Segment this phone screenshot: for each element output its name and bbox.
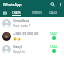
button[interactable]: Search [48,0,57,9]
button[interactable]: +380 99 000 00 [0,30,64,43]
button[interactable]: Vasyl [0,43,64,56]
staticText: 12:44 [50,45,57,49]
staticText: +380 99 000 00 [13,31,39,36]
staticText: 14:02 [50,32,57,36]
button[interactable]: Camera [0,9,10,17]
staticText: CALLS [49,11,58,15]
button[interactable]: Gmailbox [0,17,64,30]
button[interactable]: STATUS [28,9,46,17]
button[interactable]: More options [57,1,64,8]
staticText: Vasyl [13,44,22,49]
button[interactable]: CALLS [45,9,61,17]
staticText: CHATS [12,11,21,15]
staticText: WhatsApp [3,2,22,7]
staticText: Your code 1 [13,24,31,28]
button[interactable]: CHATS [10,9,22,17]
staticText: Vasyl: hi [13,50,26,54]
staticText: 🙂👍 [13,37,21,41]
staticText: STATUS [32,11,42,15]
staticText: Gmailbox [13,18,30,23]
